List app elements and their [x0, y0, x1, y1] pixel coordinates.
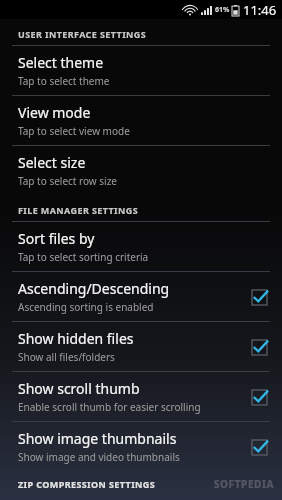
button[interactable]: Select theme: [0, 46, 282, 95]
button[interactable]: Checked: [250, 338, 268, 356]
button[interactable]: Select size: [0, 146, 282, 195]
staticText: Show hidden files: [18, 329, 134, 348]
button[interactable]: View mode: [0, 96, 282, 145]
staticText: Show image and video thumbnails: [18, 450, 180, 464]
staticText: USER INTERFACE SETTINGS: [18, 28, 147, 40]
staticText: Ascending/Descending: [18, 279, 170, 298]
staticText: Enable scroll thumb for easier scrolling: [18, 400, 201, 414]
button[interactable]: Ascending/Descending: [0, 272, 282, 321]
button[interactable]: Show scroll thumb: [0, 372, 282, 421]
staticText: Show all files/folders: [18, 350, 115, 364]
staticText: Select theme: [18, 53, 104, 72]
button[interactable]: Sort files by: [0, 222, 282, 271]
button[interactable]: Checked: [250, 388, 268, 406]
staticText: FILE MANAGER SETTINGS: [18, 204, 138, 216]
staticText: Show scroll thumb: [18, 379, 140, 398]
staticText: Ascending sorting is enabled: [18, 300, 154, 314]
staticText: 61%: [215, 5, 230, 15]
staticText: Tap to select row size: [18, 174, 117, 188]
staticText: Tap to select theme: [18, 74, 110, 88]
staticText: Select size: [18, 153, 86, 172]
staticText: Show image thumbnails: [18, 429, 177, 448]
staticText: View mode: [18, 103, 91, 122]
staticText: 11:46: [243, 1, 277, 19]
staticText: Tap to select sorting criteria: [18, 250, 149, 264]
staticText: SOFTPEDIA: [214, 477, 275, 491]
staticText: Sort files by: [18, 229, 95, 248]
button[interactable]: Show image thumbnails: [0, 422, 282, 471]
button[interactable]: Checked: [250, 288, 268, 306]
staticText: ZIP COMPRESSION SETTINGS: [18, 478, 156, 490]
staticText: Tap to select view mode: [18, 124, 130, 138]
button[interactable]: Checked: [250, 438, 268, 456]
button[interactable]: Show hidden files: [0, 322, 282, 371]
